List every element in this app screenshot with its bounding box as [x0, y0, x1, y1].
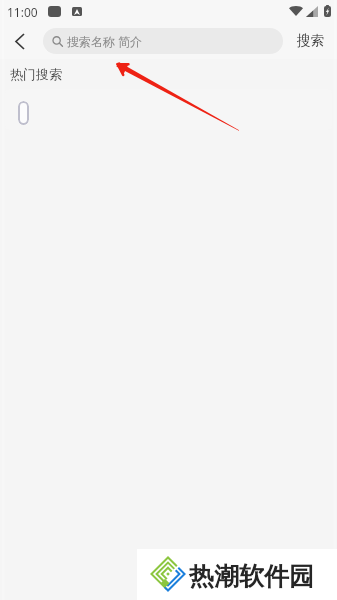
button[interactable]: 搜索 — [285, 22, 335, 59]
staticText: 热门搜索 — [10, 66, 62, 82]
button[interactable]: Back — [5, 27, 34, 56]
button[interactable]: Hot search tag — [18, 101, 29, 125]
staticText: 11:00 — [7, 4, 38, 20]
button[interactable]: 搜索名称 简介 — [43, 28, 283, 54]
staticText: 搜索 — [297, 32, 324, 49]
staticText: 热潮软件园 — [189, 561, 314, 592]
staticText: 搜索名称 简介 — [67, 33, 143, 49]
